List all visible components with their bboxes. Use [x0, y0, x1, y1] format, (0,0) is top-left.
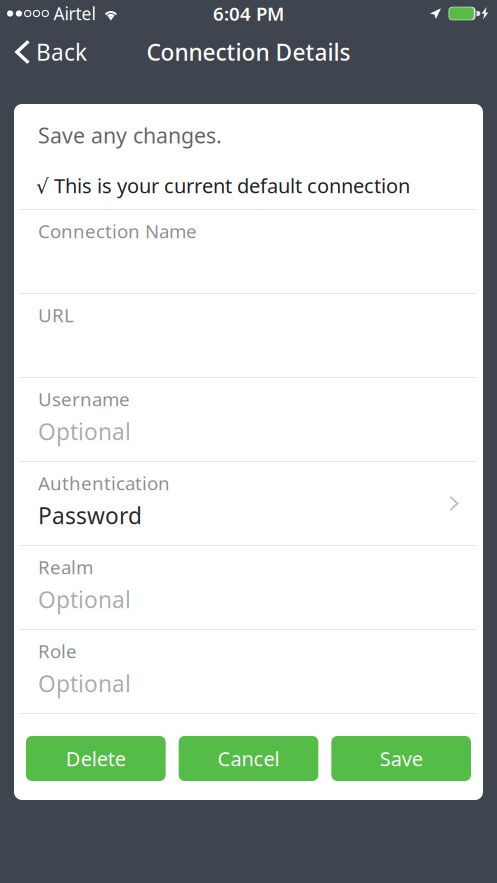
staticText: Password: [38, 500, 142, 530]
staticText: Connection Details: [146, 37, 350, 67]
button[interactable]: Authentication: [14, 462, 483, 545]
staticText: Username: [38, 387, 130, 411]
staticText: Cancel: [217, 745, 279, 772]
staticText: Authentication: [38, 471, 170, 495]
staticText: Optional: [38, 584, 131, 614]
staticText: Airtel: [53, 2, 95, 25]
staticText: URL: [38, 303, 74, 327]
staticText: Delete: [66, 745, 126, 772]
button[interactable]: Role: [14, 630, 483, 713]
button[interactable]: URL: [14, 294, 483, 377]
button[interactable]: Cancel: [179, 736, 318, 781]
staticText: √ This is your current default connectio…: [36, 172, 410, 199]
button[interactable]: Save: [331, 736, 471, 781]
button[interactable]: Realm: [14, 546, 483, 629]
staticText: Save: [380, 745, 423, 772]
staticText: Connection Name: [38, 219, 197, 243]
button[interactable]: Connection Name: [14, 210, 483, 293]
button[interactable]: Delete: [26, 736, 166, 781]
button[interactable]: Back: [0, 30, 101, 74]
staticText: Optional: [38, 668, 131, 698]
staticText: Optional: [38, 416, 131, 446]
button[interactable]: Username: [14, 378, 483, 461]
staticText: Save any changes.: [38, 121, 222, 149]
staticText: 6:04 PM: [213, 1, 284, 26]
staticText: Role: [38, 639, 77, 663]
staticText: Back: [36, 37, 87, 67]
staticText: Realm: [38, 555, 93, 579]
